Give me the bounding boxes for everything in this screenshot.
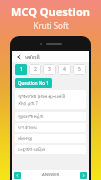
button[interactable]: Back (15, 53, 23, 61)
staticText: ગુજરાતના પ્રથમ મુખ્યમંત્રી (18, 93, 66, 99)
button[interactable]: 5 (73, 64, 86, 75)
staticText: બળવંતરાય (18, 126, 37, 130)
button[interactable]: 2 (29, 64, 41, 75)
button[interactable]: બળવંતરાય (15, 123, 86, 132)
button[interactable]: Next (80, 172, 87, 179)
button[interactable]: Question No 1 (15, 78, 52, 88)
staticText: Kruti Soft (33, 20, 69, 31)
staticText: 1 (20, 66, 23, 73)
staticText: ANSWER (42, 172, 60, 178)
button[interactable]: 1 (15, 64, 27, 75)
staticText: ઇન્દુલાલ યાજ્ઞિક (18, 147, 46, 153)
staticText: 4 (63, 66, 66, 73)
button[interactable]: Previous (14, 172, 21, 179)
button[interactable]: 4 (58, 64, 71, 75)
staticText: Question No 1 (18, 80, 49, 86)
staticText: મોરારજી (18, 137, 33, 141)
button[interactable]: ANSWER (21, 170, 80, 180)
staticText: 5 (78, 66, 81, 73)
staticText: 2 (34, 66, 37, 73)
button[interactable]: 3 (43, 64, 56, 75)
button[interactable]: જીવરાજ મહેતા (15, 112, 86, 121)
button[interactable]: ઇન્દુલાલ યાજ્ઞિક (15, 145, 86, 154)
button[interactable]: મોરારજી (15, 134, 86, 143)
staticText: જીવરાજ મહેતા (18, 114, 44, 120)
staticText: MCQ Question (11, 4, 90, 19)
staticText: 3 (48, 66, 51, 73)
staticText: કોણ હતા ? (18, 100, 38, 106)
staticText: પ્રશ્નોત્તરી (25, 53, 40, 61)
